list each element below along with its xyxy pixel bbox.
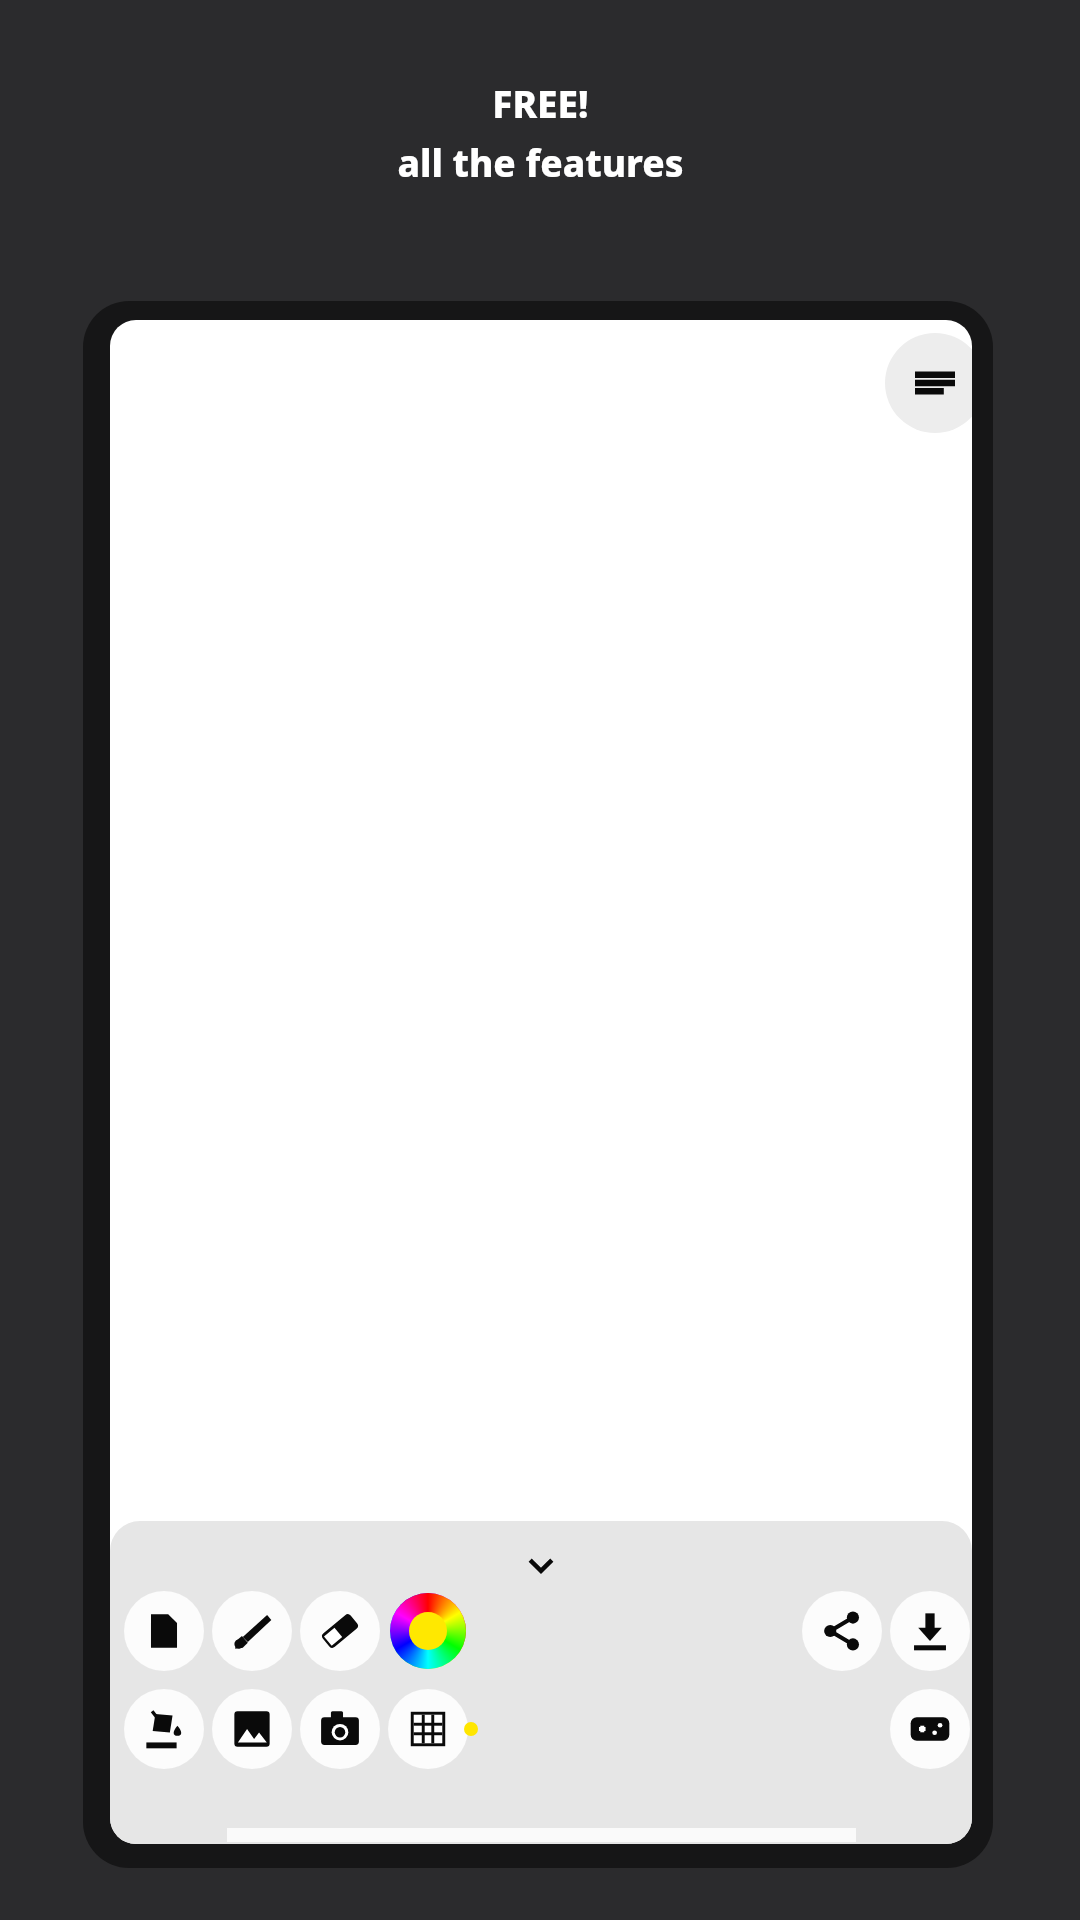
button[interactable]: Brush xyxy=(212,1591,292,1671)
button[interactable]: Game mode xyxy=(890,1689,970,1769)
button[interactable]: Image xyxy=(212,1689,292,1769)
button[interactable]: New document xyxy=(124,1591,204,1671)
button[interactable]: Color picker xyxy=(388,1591,468,1671)
button[interactable]: Download xyxy=(890,1591,970,1671)
button[interactable]: Grid xyxy=(388,1689,468,1769)
button[interactable]: Fill xyxy=(124,1689,204,1769)
button[interactable]: Share xyxy=(802,1591,882,1671)
staticText: FREE! xyxy=(492,78,589,128)
button[interactable]: Collapse toolbar xyxy=(518,1551,564,1581)
button[interactable]: Eraser xyxy=(300,1591,380,1671)
button[interactable]: Menu xyxy=(885,333,972,433)
staticText: all the features xyxy=(397,137,684,187)
button[interactable]: Camera xyxy=(300,1689,380,1769)
